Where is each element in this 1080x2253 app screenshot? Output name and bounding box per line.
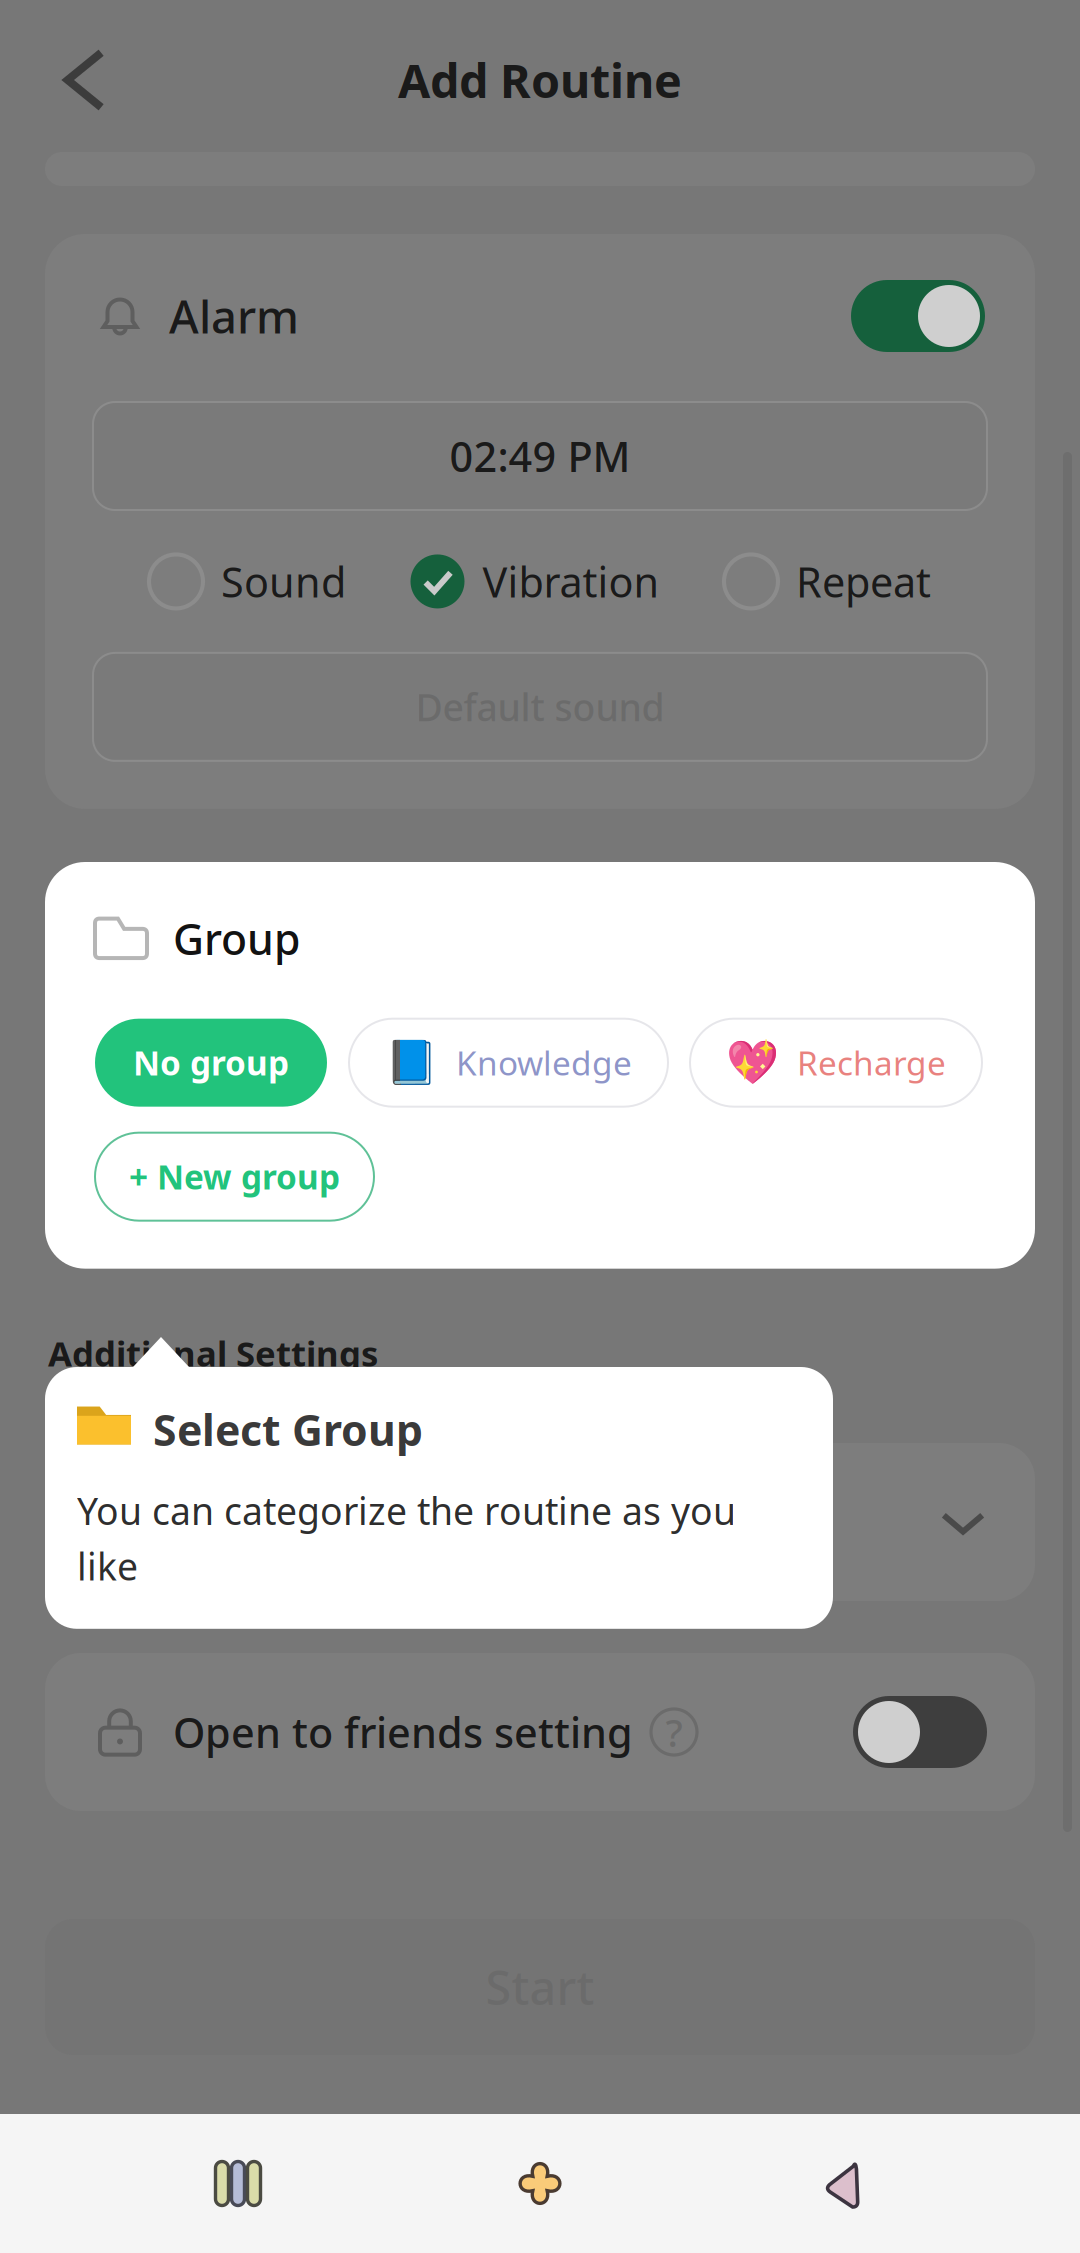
staticText: 💖 bbox=[726, 1038, 779, 1087]
button[interactable]: Back bbox=[34, 29, 136, 131]
staticText: Repeat bbox=[796, 554, 931, 609]
staticText: + New group bbox=[129, 1154, 340, 1199]
button[interactable]: 💖 bbox=[690, 1019, 982, 1107]
staticText: Sound bbox=[221, 554, 346, 609]
staticText: ? bbox=[665, 1706, 682, 1758]
button[interactable]: Profile bbox=[691, 2114, 993, 2253]
staticText: Knowledge bbox=[456, 1040, 632, 1085]
button[interactable]: No group bbox=[95, 1019, 327, 1107]
staticText: Recharge bbox=[797, 1040, 946, 1085]
staticText: Start bbox=[485, 1956, 594, 2018]
staticText: Alarm bbox=[169, 286, 299, 346]
staticText: 📘 bbox=[385, 1038, 438, 1087]
button[interactable]: + New group bbox=[95, 1133, 374, 1221]
staticText: Vibration bbox=[482, 554, 659, 609]
staticText: No group bbox=[133, 1040, 289, 1085]
staticText: Default sound bbox=[415, 682, 664, 732]
staticText: Group bbox=[173, 910, 300, 967]
staticText: Additional Settings bbox=[48, 1330, 378, 1376]
staticText: like bbox=[77, 1541, 138, 1591]
button[interactable]: Routines bbox=[87, 2114, 389, 2253]
button[interactable]: Create bbox=[389, 2114, 691, 2253]
staticText: Add Routine bbox=[398, 49, 682, 111]
staticText: 02:49 PM bbox=[449, 429, 630, 483]
button[interactable]: 📘 bbox=[349, 1019, 668, 1107]
staticText: You can categorize the routine as you bbox=[77, 1486, 736, 1535]
staticText: Select Group bbox=[153, 1401, 423, 1458]
staticText: Open to friends setting bbox=[173, 1705, 633, 1759]
